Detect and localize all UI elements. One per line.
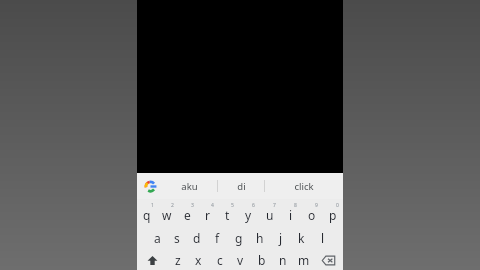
staticText: click [294, 180, 314, 193]
button[interactable]: f [207, 226, 228, 250]
staticText: 7 [273, 202, 276, 209]
staticText: 6 [252, 202, 255, 209]
staticText: h [256, 230, 264, 246]
button[interactable]: v [230, 250, 251, 270]
staticText: 5 [231, 202, 234, 209]
button[interactable]: 2 [157, 200, 177, 226]
button[interactable]: Backspace [314, 250, 343, 270]
button[interactable]: b [251, 250, 272, 270]
staticText: m [298, 252, 310, 268]
button[interactable]: h [249, 226, 270, 250]
button[interactable]: k [291, 226, 312, 250]
staticText: j [279, 230, 283, 246]
button[interactable]: x [188, 250, 209, 270]
button[interactable]: c [209, 250, 230, 270]
button[interactable]: Shift [137, 250, 167, 270]
button[interactable]: 5 [217, 200, 238, 226]
button[interactable]: j [270, 226, 291, 250]
button[interactable]: z [167, 250, 188, 270]
button[interactable]: m [293, 250, 314, 270]
staticText: z [175, 252, 181, 268]
button[interactable]: click [265, 173, 343, 199]
button[interactable]: aku [161, 173, 217, 199]
staticText: e [184, 207, 191, 223]
staticText: 2 [171, 202, 174, 209]
staticText: i [289, 207, 293, 223]
staticText: n [279, 252, 287, 268]
staticText: v [237, 252, 244, 268]
staticText: 9 [315, 202, 318, 209]
staticText: 4 [211, 202, 214, 209]
staticText: w [162, 207, 172, 223]
staticText: b [258, 252, 266, 268]
button[interactable]: 7 [259, 200, 280, 226]
staticText: k [298, 230, 305, 246]
button[interactable]: 9 [301, 200, 322, 226]
staticText: 3 [191, 202, 194, 209]
button[interactable]: g [228, 226, 249, 250]
staticText: s [174, 230, 180, 246]
button[interactable]: d [187, 226, 207, 250]
button[interactable]: 1 [137, 200, 157, 226]
staticText: u [266, 207, 274, 223]
staticText: 0 [336, 202, 339, 209]
staticText: p [329, 207, 337, 223]
staticText: a [154, 230, 161, 246]
staticText: g [235, 230, 243, 246]
button[interactable]: 0 [322, 200, 343, 226]
button[interactable]: 6 [238, 200, 259, 226]
button[interactable]: s [167, 226, 187, 250]
button[interactable]: l [312, 226, 333, 250]
staticText: d [193, 230, 201, 246]
button[interactable]: di [218, 173, 264, 199]
button[interactable]: Google [144, 180, 157, 193]
staticText: x [195, 252, 202, 268]
button[interactable]: 4 [197, 200, 217, 226]
button[interactable]: n [272, 250, 293, 270]
staticText: l [321, 230, 325, 246]
button[interactable]: 8 [280, 200, 301, 226]
staticText: c [217, 252, 223, 268]
staticText: aku [181, 180, 198, 193]
staticText: t [225, 207, 230, 223]
staticText: 1 [151, 202, 154, 209]
button[interactable]: 3 [177, 200, 197, 226]
staticText: o [308, 207, 316, 223]
staticText: f [215, 230, 220, 246]
staticText: r [205, 207, 210, 223]
button[interactable]: a [147, 226, 167, 250]
staticText: di [237, 180, 246, 193]
staticText: q [143, 207, 151, 223]
staticText: y [245, 207, 252, 223]
staticText: 8 [294, 202, 297, 209]
